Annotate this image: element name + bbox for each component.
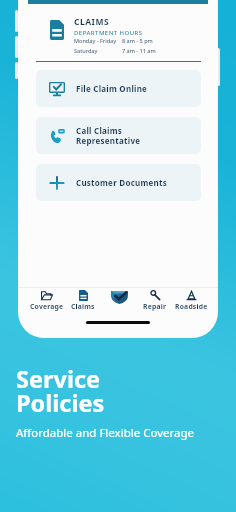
staticText: Saturday bbox=[74, 47, 98, 54]
staticText: DEPARTMENT HOURS bbox=[74, 29, 143, 37]
button[interactable]: Policies bbox=[101, 288, 137, 312]
button[interactable]: Repair bbox=[137, 288, 173, 311]
staticText: Service Policies bbox=[16, 363, 105, 419]
staticText: Affordable and Flexible Coverage bbox=[16, 425, 195, 441]
staticText: Repair bbox=[143, 302, 167, 311]
staticText: Call Claims Representative bbox=[76, 125, 141, 147]
staticText: Coverage bbox=[30, 302, 64, 311]
staticText: 8 am - 5 pm bbox=[122, 37, 153, 44]
staticText: 7 am - 11 am bbox=[122, 47, 156, 54]
button[interactable]: Coverage bbox=[28, 288, 65, 311]
staticText: File Claim Online bbox=[76, 83, 148, 94]
staticText: CLAIMS bbox=[74, 16, 110, 28]
button[interactable]: Claims bbox=[65, 288, 101, 311]
button[interactable]: Roadside bbox=[173, 288, 209, 311]
button[interactable]: Call Claims Representative bbox=[36, 117, 201, 154]
staticText: Claims bbox=[71, 302, 95, 311]
staticText: Customer Documents bbox=[76, 177, 168, 188]
staticText: Monday - Friday bbox=[74, 37, 117, 44]
button[interactable]: Customer Documents bbox=[36, 164, 201, 201]
button[interactable]: File Claim Online bbox=[36, 70, 201, 107]
staticText: Roadside bbox=[175, 302, 208, 311]
